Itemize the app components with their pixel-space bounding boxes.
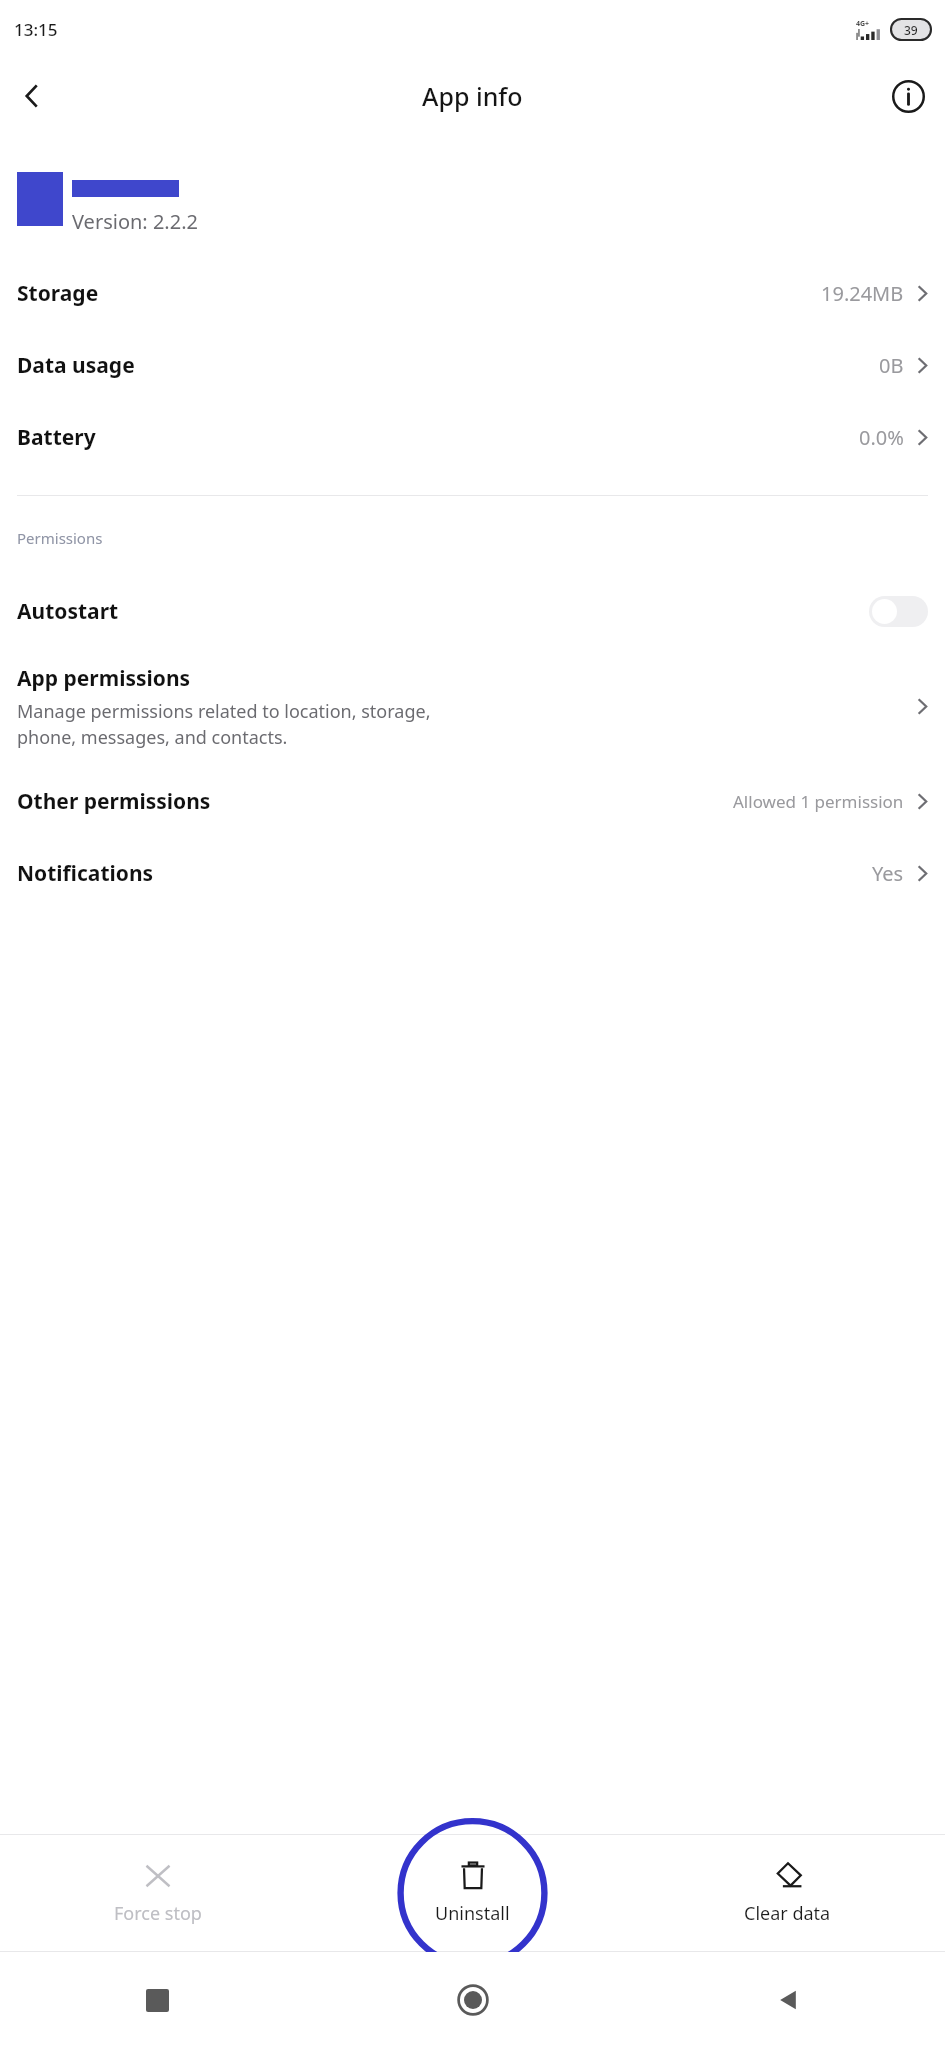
button[interactable]: Other permissions — [0, 765, 945, 837]
button[interactable]: Back — [630, 1952, 945, 2048]
button[interactable]: Autostart — [0, 572, 945, 650]
staticText: Permissions — [17, 528, 103, 548]
button[interactable]: About app info — [881, 69, 935, 123]
staticText: Battery — [17, 423, 96, 452]
staticText: App info — [422, 79, 523, 113]
staticText: Uninstall — [435, 1901, 510, 1926]
button[interactable]: Clear data — [630, 1854, 945, 1932]
staticText: 19.24MB — [821, 280, 904, 307]
staticText: Autostart — [17, 597, 119, 626]
staticText: Clear data — [744, 1901, 831, 1926]
staticText: 4G+ — [856, 19, 870, 29]
button[interactable]: App permissions — [0, 650, 945, 765]
staticText: Storage — [17, 279, 99, 308]
button[interactable]: Storage — [0, 257, 945, 329]
staticText: 0B — [879, 352, 904, 379]
button[interactable]: Back — [4, 68, 60, 124]
staticText: Other permissions — [17, 787, 211, 816]
button[interactable]: Battery — [0, 401, 945, 473]
button[interactable]: Notifications — [0, 837, 945, 909]
button[interactable]: Recent apps — [0, 1952, 315, 2048]
staticText: App permissions — [17, 664, 191, 693]
staticText: Allowed 1 permission — [733, 790, 904, 813]
staticText: Yes — [872, 860, 904, 887]
staticText: 39 — [904, 22, 918, 38]
staticText: Data usage — [17, 351, 135, 380]
button[interactable]: Force stop — [0, 1854, 315, 1932]
button[interactable]: Data usage — [0, 329, 945, 401]
staticText: 0.0% — [859, 424, 904, 451]
staticText: Version: 2.2.2 — [72, 208, 198, 235]
button[interactable]: Uninstall — [315, 1854, 630, 1932]
staticText: Manage permissions related to location, … — [17, 699, 431, 749]
staticText: Notifications — [17, 859, 154, 888]
staticText: Force stop — [114, 1901, 202, 1926]
button[interactable]: Home — [315, 1952, 630, 2048]
staticText: 13:15 — [14, 18, 58, 41]
